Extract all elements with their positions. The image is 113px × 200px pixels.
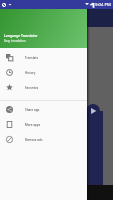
button[interactable]: Speak: [86, 104, 100, 118]
button[interactable]: Share app: [0, 102, 87, 117]
staticText: Share app: [25, 108, 40, 112]
staticText: More apps: [25, 123, 41, 127]
staticText: Translate: [25, 56, 39, 60]
staticText: Language Translator: [4, 33, 38, 38]
staticText: 9:04 PM: [95, 2, 111, 8]
button[interactable]: Favorites: [0, 80, 87, 95]
button[interactable]: History: [0, 65, 87, 80]
staticText: Favorites: [25, 86, 39, 90]
button[interactable]: Remove ads: [0, 132, 87, 147]
button[interactable]: More apps: [0, 117, 87, 132]
staticText: Easy translation: [4, 39, 26, 43]
staticText: History: [25, 71, 36, 75]
staticText: Remove ads: [25, 138, 43, 142]
button[interactable]: Translate: [0, 50, 87, 65]
